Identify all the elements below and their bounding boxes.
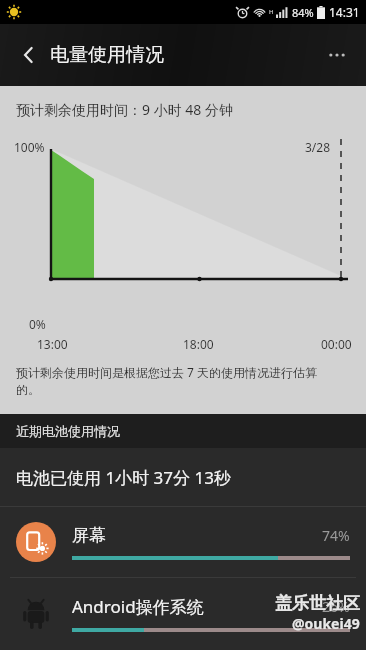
staticText: 电量使用情况 (50, 43, 164, 67)
staticText: 3/28 (305, 139, 331, 155)
button[interactable]: 屏幕 (0, 507, 366, 577)
staticText: Android操作系统 (72, 595, 322, 618)
staticText: 预计剩余使用时间是根据您过去 7 天的使用情况进行估算 的。 (16, 364, 318, 398)
staticText: 74% (322, 526, 350, 545)
staticText: 14:31 (329, 4, 360, 20)
staticText: 电池已使用 1小时 37分 13秒 (16, 466, 231, 489)
staticText: 13:00 (37, 336, 68, 352)
button[interactable]: Android操作系统 (0, 578, 366, 648)
staticText: 00:00 (321, 336, 352, 352)
button[interactable]: Back (8, 34, 50, 76)
staticText: 84% (292, 5, 314, 20)
staticText: 预计剩余使用时间：9 小时 48 分钟 (16, 100, 233, 119)
staticText: 屏幕 (72, 525, 322, 546)
staticText: 18:00 (183, 336, 214, 352)
button[interactable]: More options (316, 34, 358, 76)
button[interactable]: 电池已使用 1小时 37分 13秒 (0, 448, 366, 506)
staticText: 26% (322, 597, 350, 616)
staticText: H (269, 8, 274, 16)
staticText: 近期电池使用情况 (16, 423, 120, 439)
staticText: 100% (14, 139, 45, 155)
staticText: 0% (29, 316, 46, 332)
staticText: 盖乐世社区 (275, 593, 360, 614)
staticText: @oukei49 (292, 614, 360, 633)
